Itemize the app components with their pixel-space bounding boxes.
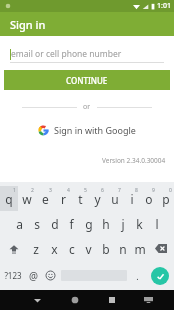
button[interactable]: g: [80, 211, 97, 236]
staticText: email or cell phone number: [11, 48, 122, 60]
staticText: 3: [49, 187, 52, 194]
button[interactable]: Backspace: [148, 236, 174, 261]
button[interactable]: d: [46, 211, 63, 236]
staticText: 1:01: [157, 1, 171, 11]
button[interactable]: e: [36, 186, 54, 211]
staticText: u: [111, 191, 119, 207]
button[interactable]: Recents: [93, 290, 130, 310]
staticText: p: [162, 191, 170, 207]
staticText: z: [33, 241, 39, 257]
staticText: 2: [31, 187, 34, 194]
button[interactable]: v: [80, 236, 97, 261]
staticText: 0: [169, 187, 172, 194]
staticText: or: [83, 102, 91, 112]
button[interactable]: Done: [151, 267, 169, 285]
button[interactable]: i: [123, 186, 140, 211]
staticText: h: [102, 216, 110, 232]
button[interactable]: Hide keyboard: [130, 290, 167, 310]
staticText: k: [136, 216, 143, 232]
staticText: m: [134, 241, 146, 257]
button[interactable]: Sign in: [0, 12, 174, 36]
button[interactable]: n: [114, 236, 131, 261]
button[interactable]: Back: [19, 290, 56, 310]
staticText: e: [42, 191, 49, 207]
button[interactable]: z: [27, 236, 45, 261]
staticText: o: [145, 191, 153, 207]
staticText: Sign in: [10, 17, 46, 32]
button[interactable]: CONTINUE: [4, 70, 170, 90]
staticText: y: [94, 191, 101, 207]
staticText: @: [29, 269, 38, 283]
button[interactable]: Emoji: [42, 261, 59, 290]
staticText: 4: [67, 187, 70, 194]
staticText: 5: [84, 187, 87, 194]
button[interactable]: b: [97, 236, 114, 261]
button[interactable]: x: [45, 236, 63, 261]
staticText: l: [155, 216, 159, 232]
button[interactable]: c: [63, 236, 80, 261]
staticText: 8: [135, 187, 138, 194]
staticText: x: [51, 241, 58, 257]
button[interactable]: ?123: [0, 261, 25, 290]
button[interactable]: y: [89, 186, 106, 211]
button[interactable]: .: [129, 261, 146, 290]
button[interactable]: m: [131, 236, 148, 261]
staticText: c: [69, 241, 75, 257]
staticText: 7: [118, 187, 121, 194]
button[interactable]: r: [54, 186, 72, 211]
staticText: d: [51, 216, 59, 232]
staticText: r: [61, 191, 66, 207]
staticText: 6: [101, 187, 104, 194]
button[interactable]: f: [63, 211, 80, 236]
button[interactable]: p: [157, 186, 174, 211]
staticText: 9: [152, 187, 155, 194]
staticText: a: [16, 216, 23, 232]
staticText: n: [119, 241, 127, 257]
button[interactable]: Shift: [0, 236, 27, 261]
staticText: Sign in with Google: [54, 124, 136, 136]
staticText: q: [5, 191, 13, 207]
staticText: s: [34, 216, 40, 232]
staticText: f: [69, 216, 74, 232]
staticText: Version 2.34.0.30004: [102, 156, 166, 165]
button[interactable]: k: [131, 211, 148, 236]
button[interactable]: o: [140, 186, 157, 211]
staticText: g: [85, 216, 93, 232]
staticText: ?123: [4, 270, 22, 281]
button[interactable]: @: [25, 261, 42, 290]
button[interactable]: l: [148, 211, 165, 236]
button[interactable]: h: [97, 211, 114, 236]
staticText: 1: [13, 187, 16, 194]
staticText: v: [85, 241, 92, 257]
button[interactable]: Sign in with Google: [32, 121, 142, 139]
button[interactable]: q: [0, 186, 18, 211]
button[interactable]: j: [114, 211, 131, 236]
button[interactable]: w: [18, 186, 36, 211]
staticText: t: [78, 191, 83, 207]
staticText: j: [121, 216, 125, 232]
button[interactable]: email or cell phone number: [10, 46, 164, 62]
button[interactable]: s: [28, 211, 46, 236]
staticText: w: [22, 191, 32, 207]
staticText: b: [102, 241, 110, 257]
button[interactable]: u: [106, 186, 123, 211]
staticText: .: [136, 270, 139, 282]
staticText: i: [130, 191, 134, 207]
button[interactable]: t: [72, 186, 89, 211]
staticText: CONTINUE: [66, 75, 108, 86]
button[interactable]: a: [10, 211, 28, 236]
button[interactable]: Home: [56, 290, 93, 310]
